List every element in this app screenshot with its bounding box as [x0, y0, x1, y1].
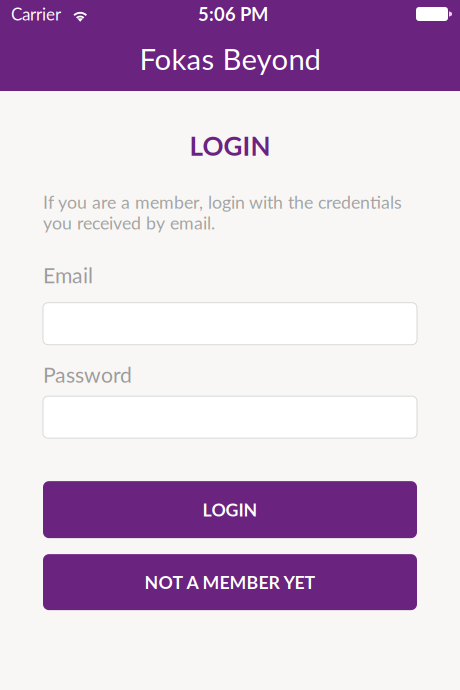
- staticText: 5:06 PM: [198, 3, 268, 25]
- button[interactable]: LOGIN: [43, 481, 417, 538]
- staticText: Fokas Beyond: [139, 41, 320, 76]
- staticText: LOGIN: [202, 499, 257, 520]
- staticText: Password: [43, 362, 132, 387]
- staticText: Carrier: [11, 4, 61, 24]
- staticText: Email: [43, 262, 93, 288]
- staticText: LOGIN: [189, 130, 270, 161]
- button[interactable]: NOT A MEMBER YET: [43, 554, 417, 610]
- staticText: NOT A MEMBER YET: [144, 571, 315, 593]
- staticText: If you are a member, login with the cred…: [43, 191, 402, 233]
